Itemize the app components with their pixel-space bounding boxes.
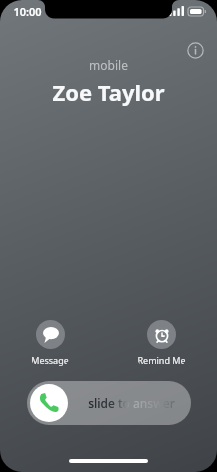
- staticText: Remind Me: [137, 354, 186, 366]
- button[interactable]: Answer call: [30, 384, 68, 422]
- button[interactable]: Message: [31, 320, 69, 366]
- button[interactable]: Slide to answer: [27, 381, 191, 425]
- staticText: Zoe Taylor: [52, 77, 165, 107]
- staticText: Message: [31, 354, 69, 366]
- staticText: 10:00: [13, 4, 42, 19]
- button[interactable]: Remind Me: [137, 320, 186, 366]
- staticText: mobile: [89, 57, 128, 73]
- staticText: slide to answer: [88, 395, 175, 411]
- button[interactable]: Call info: [182, 37, 208, 63]
